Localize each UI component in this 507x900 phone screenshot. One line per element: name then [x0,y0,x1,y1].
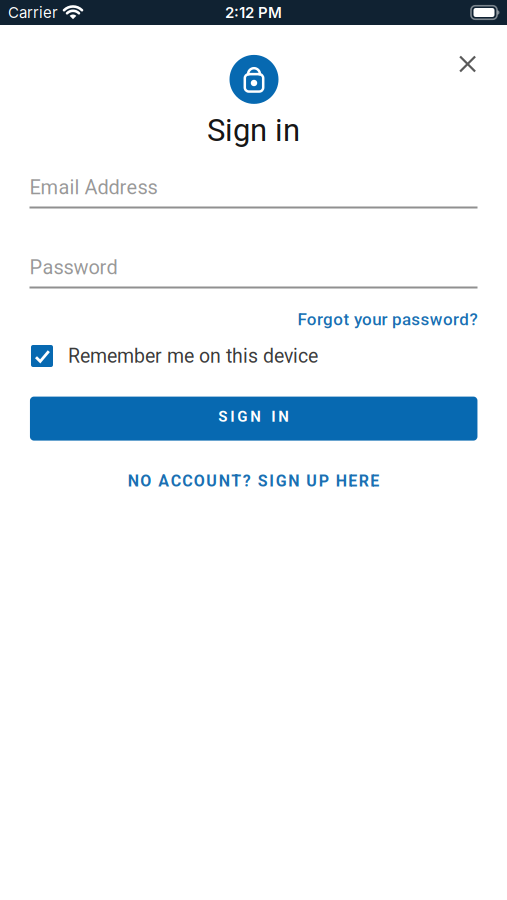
button[interactable]: Forgot your password? [297,309,477,329]
staticText: S I G N I N [218,408,289,425]
button[interactable]: Close [448,44,487,83]
staticText: Password [29,256,117,279]
staticText: Carrier [8,3,58,21]
staticText: Sign in [207,112,300,149]
button[interactable]: NO ACCOUNT? SIGN UP HERE [103,472,403,490]
staticText: Email Address [29,176,157,199]
button[interactable]: S I G N I N [30,397,477,441]
staticText: NO ACCOUNT? SIGN UP HERE [128,472,379,490]
staticText: 2:12 PM [225,3,282,21]
button[interactable]: Remember me on this device [31,345,318,367]
staticText: Remember me on this device [68,345,318,367]
staticText: Forgot your password? [297,309,477,329]
